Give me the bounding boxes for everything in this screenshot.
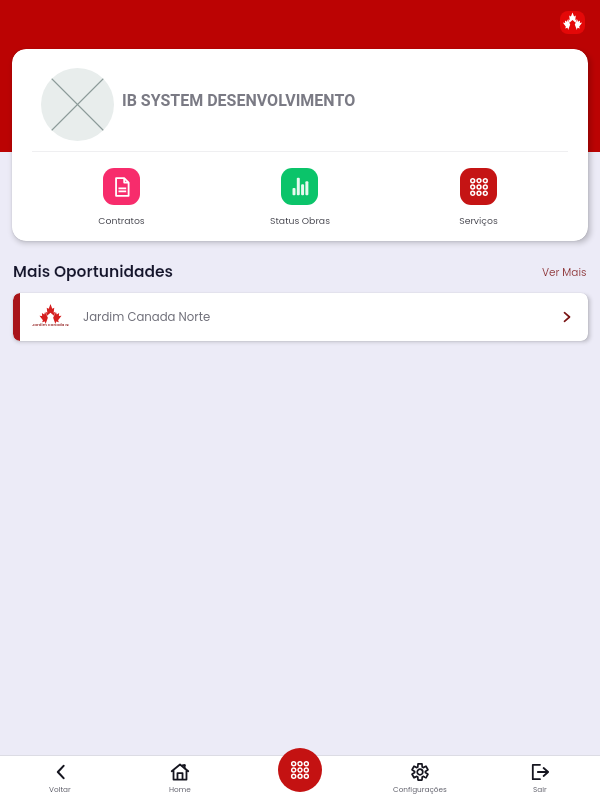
button[interactable]: Logotipo [560, 11, 585, 34]
staticText: Contratos [98, 214, 145, 227]
staticText: Voltar [49, 784, 71, 794]
staticText: Home [169, 784, 191, 794]
staticText: Jardim Canada Norte [83, 309, 211, 325]
staticText: Ver Mais [542, 265, 587, 280]
staticText: Sair [533, 784, 547, 794]
button[interactable]: Configurações [360, 756, 480, 800]
button[interactable]: Status Obras [210, 168, 389, 227]
button[interactable]: Jardim Canada Norte [13, 293, 588, 341]
staticText: Serviços [459, 214, 498, 227]
button[interactable]: Serviços [389, 168, 568, 227]
button[interactable]: Voltar [0, 756, 120, 800]
button[interactable]: Menu [278, 748, 322, 792]
staticText: Configurações [393, 784, 447, 794]
staticText: IB SYSTEM DESENVOLVIMENTO [122, 91, 356, 110]
button[interactable]: Contratos [32, 168, 210, 227]
staticText: Status Obras [270, 214, 330, 227]
button[interactable]: Home [120, 756, 240, 800]
button[interactable]: Sair [480, 756, 600, 800]
staticText: Jardim Canada Norte [32, 322, 69, 328]
button[interactable]: Ver Mais [541, 263, 588, 282]
staticText: Mais Oportunidades [13, 261, 174, 283]
